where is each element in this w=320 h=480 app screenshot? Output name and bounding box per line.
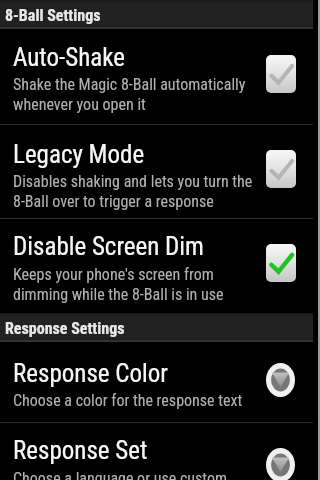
staticText: 8-Ball Settings — [5, 6, 101, 25]
button[interactable]: Disable Screen Dim — [0, 219, 313, 313]
staticText: Legacy Mode — [13, 140, 145, 169]
staticText: Shake the Magic 8-Ball automatically whe… — [13, 75, 246, 114]
button[interactable]: Open list — [266, 363, 295, 397]
staticText: Choose a language or use custom — [13, 469, 227, 480]
staticText: Keeps your phone's screen from dimming w… — [13, 265, 224, 304]
staticText: Response Settings — [5, 319, 125, 338]
staticText: Response Color — [13, 359, 168, 388]
button[interactable]: Response Set — [0, 423, 313, 480]
button[interactable]: Legacy Mode — [0, 125, 313, 218]
staticText: Choose a color for the response text — [13, 391, 243, 410]
staticText: Disables shaking and lets you turn the 8… — [13, 172, 253, 211]
button[interactable]: Auto-Shake — [0, 29, 313, 124]
staticText: Response Set — [13, 436, 148, 465]
button[interactable]: Open list — [266, 448, 295, 480]
button[interactable]: Response Color — [0, 342, 313, 422]
staticText: Disable Screen Dim — [13, 232, 204, 261]
staticText: Auto-Shake — [13, 43, 126, 72]
